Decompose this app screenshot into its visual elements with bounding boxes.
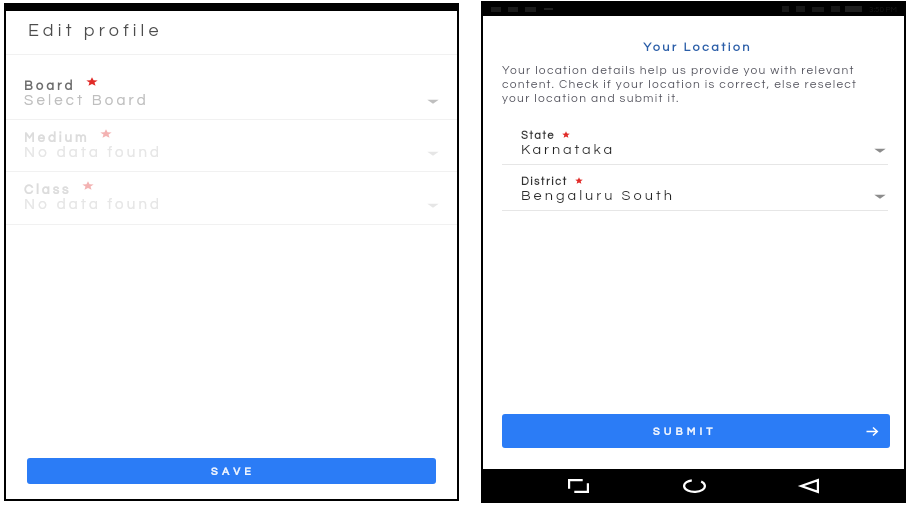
button[interactable]: Back [789, 469, 829, 502]
button[interactable]: SAVE [27, 458, 436, 484]
staticText: District [521, 176, 568, 187]
staticText: State [521, 130, 555, 141]
staticText: Your location details help us provide yo… [502, 64, 864, 104]
button[interactable]: Medium [6, 120, 457, 172]
button[interactable]: Recent apps [558, 469, 598, 502]
staticText: 3:50 PM [869, 5, 897, 13]
button[interactable]: Home [674, 469, 714, 502]
staticText: Select Board [24, 93, 149, 108]
staticText: SUBMIT [653, 426, 717, 437]
staticText: Board [24, 79, 76, 92]
staticText: Your Location [491, 41, 904, 54]
button[interactable]: Board [6, 55, 457, 120]
staticText: Edit profile [28, 21, 163, 40]
button[interactable]: SUBMIT [502, 414, 890, 448]
button[interactable]: Class [6, 172, 457, 225]
staticText: Karnataka [521, 142, 615, 157]
staticText: Medium [24, 131, 90, 144]
button[interactable]: State [502, 130, 888, 176]
button[interactable]: District [502, 176, 888, 222]
staticText: No data found [24, 145, 163, 160]
staticText: Class [24, 183, 72, 196]
staticText: Bengaluru South [521, 188, 675, 203]
staticText: No data found [24, 197, 163, 212]
staticText: SAVE [211, 466, 256, 477]
